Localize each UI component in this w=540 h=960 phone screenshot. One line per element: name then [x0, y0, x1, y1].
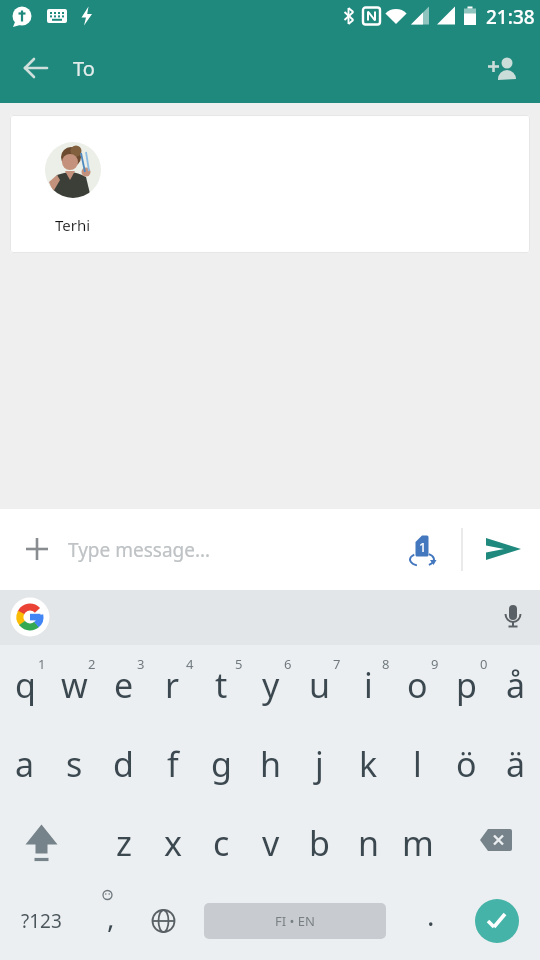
staticText: v [262, 820, 280, 866]
staticText: 5 [235, 655, 243, 673]
button[interactable]: l [393, 724, 442, 803]
staticText: d [113, 741, 134, 787]
staticText: u [309, 662, 331, 708]
staticText: z [116, 820, 132, 866]
staticText: å [506, 662, 526, 708]
staticText: Terhi [55, 215, 91, 235]
button[interactable]: n [344, 803, 393, 882]
button[interactable]: , [99, 882, 148, 960]
staticText: w [61, 662, 88, 708]
staticText: h [260, 741, 282, 787]
button[interactable]: 1 [398, 525, 446, 573]
staticText: x [164, 820, 182, 866]
staticText: 1 [38, 655, 46, 673]
staticText: k [359, 741, 378, 787]
button[interactable]: g [197, 724, 246, 803]
button[interactable]: FI • EN [197, 882, 393, 960]
button[interactable] [442, 882, 540, 960]
button[interactable]: q [0, 645, 50, 724]
staticText: To [73, 55, 95, 82]
staticText: f [167, 741, 179, 787]
staticText: q [15, 662, 36, 708]
staticText: j [315, 741, 324, 787]
staticText: 7 [333, 655, 341, 673]
button[interactable]: i [344, 645, 393, 724]
button[interactable]: v [246, 803, 295, 882]
button[interactable]: y [246, 645, 295, 724]
button[interactable]: å [491, 645, 540, 724]
button[interactable] [13, 525, 61, 573]
button[interactable]: b [295, 803, 344, 882]
staticText: o [407, 662, 428, 708]
button[interactable] [0, 803, 99, 882]
button[interactable]: p [442, 645, 491, 724]
button[interactable]: j [295, 724, 344, 803]
button[interactable] [489, 593, 537, 641]
button[interactable] [479, 525, 527, 573]
button[interactable]: h [246, 724, 295, 803]
button[interactable]: Type message… [68, 509, 398, 590]
staticText: FI • EN [275, 912, 315, 930]
staticText: 2 [88, 655, 96, 673]
staticText: y [262, 662, 280, 708]
staticText: 1 [419, 538, 427, 556]
staticText: m [402, 820, 434, 866]
button[interactable] [12, 44, 60, 92]
staticText: ?123 [21, 908, 62, 934]
staticText: 8 [382, 655, 390, 673]
staticText: s [66, 741, 83, 787]
staticText: 21:38 [486, 4, 535, 30]
staticText: r [165, 662, 180, 708]
button[interactable]: d [99, 724, 148, 803]
staticText: . [427, 896, 435, 934]
button[interactable]: s [50, 724, 99, 803]
button[interactable] [148, 882, 197, 960]
button[interactable]: ä [491, 724, 540, 803]
staticText: c [213, 820, 230, 866]
staticText: 0 [480, 655, 488, 673]
staticText: ä [506, 741, 526, 787]
button[interactable]: f [148, 724, 197, 803]
button[interactable]: w [50, 645, 99, 724]
staticText: 3 [137, 655, 145, 673]
button[interactable]: m [393, 803, 442, 882]
button[interactable]: . [393, 882, 442, 960]
staticText: ö [456, 741, 477, 787]
button[interactable]: ö [442, 724, 491, 803]
button[interactable]: r [148, 645, 197, 724]
staticText: , [107, 898, 115, 936]
button[interactable]: o [393, 645, 442, 724]
button[interactable]: c [197, 803, 246, 882]
staticText: i [364, 662, 373, 708]
staticText: 9 [431, 655, 439, 673]
staticText: l [413, 741, 422, 787]
button[interactable]: a [0, 724, 50, 803]
staticText: 6 [284, 655, 292, 673]
staticText: n [358, 820, 380, 866]
staticText: a [15, 741, 35, 787]
button[interactable]: u [295, 645, 344, 724]
staticText: b [309, 820, 330, 866]
staticText: p [456, 662, 477, 708]
button[interactable] [442, 803, 540, 882]
button[interactable]: z [99, 803, 148, 882]
button[interactable]: x [148, 803, 197, 882]
staticText: t [215, 662, 228, 708]
button[interactable]: t [197, 645, 246, 724]
staticText: g [211, 741, 232, 787]
button[interactable]: Terhi [10, 115, 530, 253]
button[interactable] [10, 597, 50, 637]
staticText: Type message… [68, 537, 210, 563]
button[interactable]: e [99, 645, 148, 724]
staticText: 4 [186, 655, 194, 673]
button[interactable]: ?123 [0, 882, 99, 960]
staticText: e [114, 662, 134, 708]
button[interactable] [480, 43, 528, 91]
button[interactable]: k [344, 724, 393, 803]
